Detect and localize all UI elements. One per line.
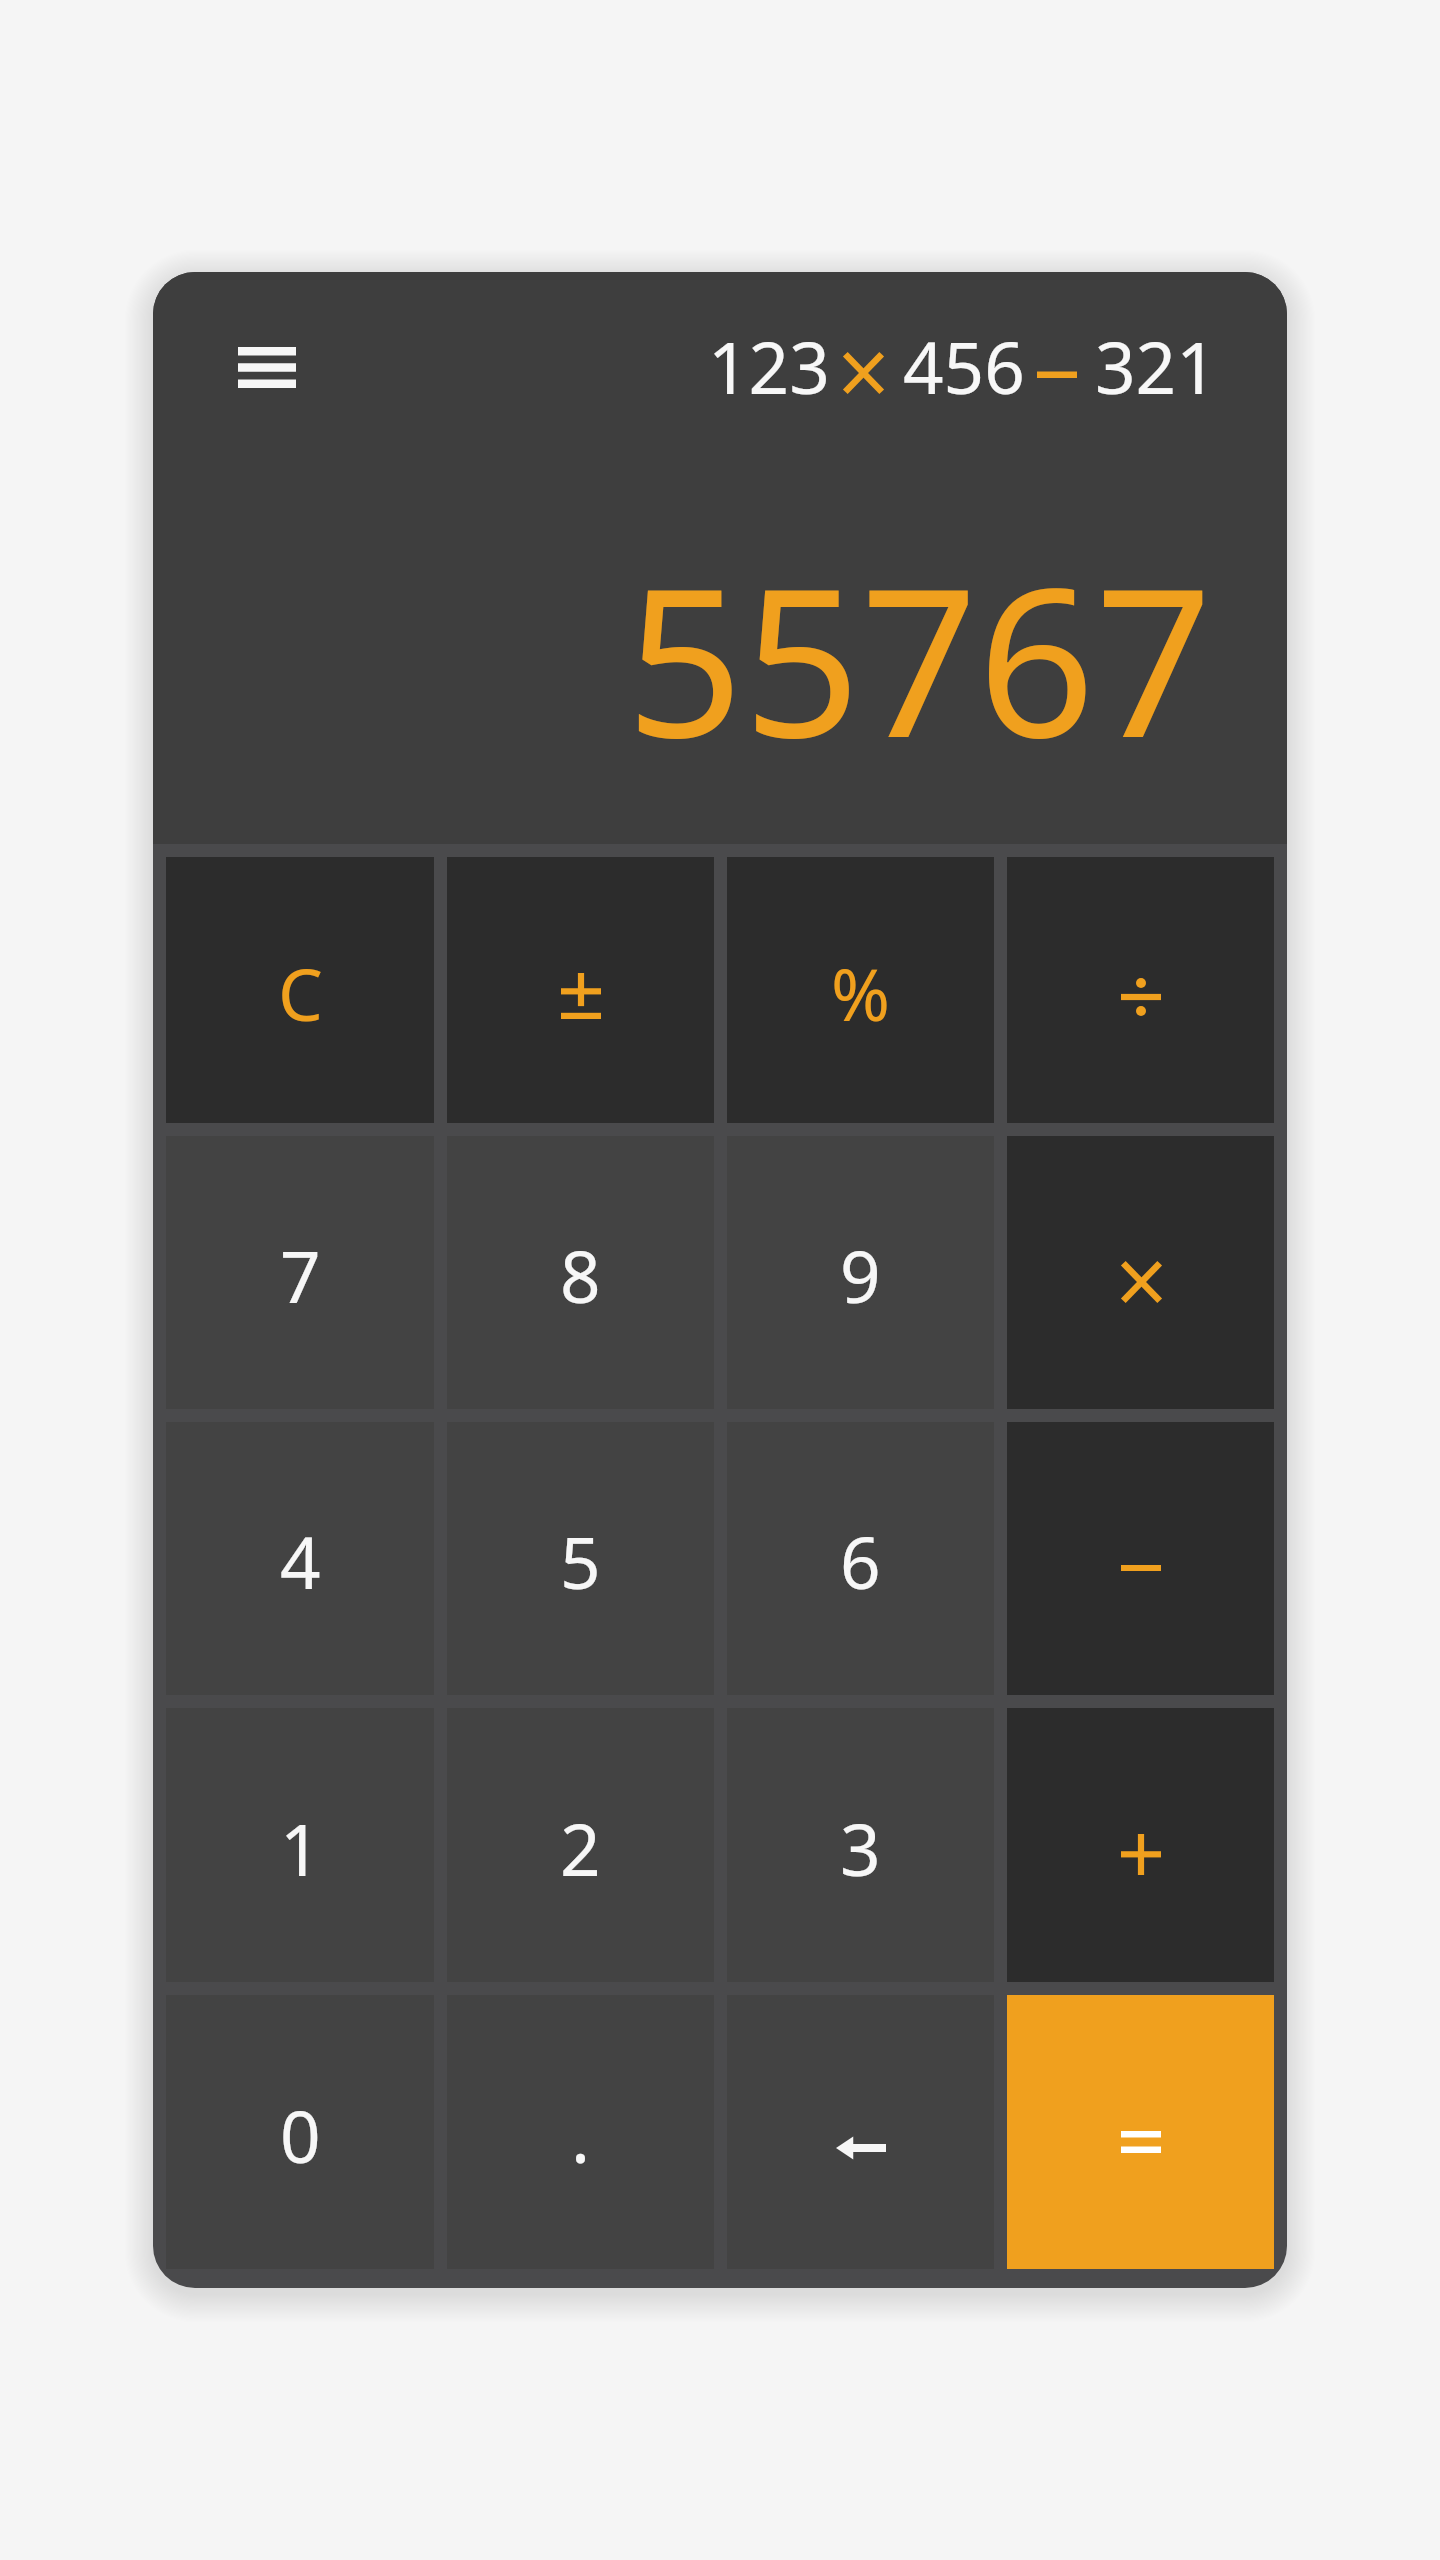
button[interactable]: 6 (727, 1422, 994, 1695)
staticText: 55767 (626, 518, 1213, 797)
button[interactable]: % (727, 857, 994, 1123)
button[interactable]: Equals (1007, 1995, 1274, 2269)
button[interactable]: Subtract (1007, 1422, 1274, 1695)
staticText: 6 (840, 1513, 881, 1610)
staticText: 2 (560, 1800, 601, 1897)
button[interactable]: 4 (166, 1422, 434, 1695)
staticText: % (831, 945, 891, 1042)
button[interactable]: Backspace (727, 1995, 994, 2269)
staticText: C (278, 945, 323, 1042)
button[interactable]: Multiply (1007, 1136, 1274, 1409)
staticText: . (571, 2087, 591, 2184)
staticText: 8 (560, 1227, 601, 1324)
button[interactable]: 5 (447, 1422, 714, 1695)
button[interactable]: 0 (166, 1995, 434, 2269)
staticText: 5 (560, 1513, 601, 1610)
staticText: 7 (280, 1227, 321, 1324)
button[interactable]: 2 (447, 1708, 714, 1982)
staticText: 321 (1095, 318, 1217, 415)
button[interactable]: C (166, 857, 434, 1123)
button[interactable]: Plus minus (447, 857, 714, 1123)
button[interactable]: 7 (166, 1136, 434, 1409)
button[interactable]: 3 (727, 1708, 994, 1982)
staticText: 123 (708, 318, 830, 415)
staticText: 1 (280, 1800, 321, 1897)
button[interactable]: 9 (727, 1136, 994, 1409)
staticText: 3 (840, 1800, 881, 1897)
button[interactable]: Add (1007, 1708, 1274, 1982)
staticText: 0 (280, 2087, 321, 2184)
staticText: 456 (903, 318, 1025, 415)
button[interactable]: Menu (229, 339, 305, 395)
button[interactable]: 1 (166, 1708, 434, 1982)
staticText: 4 (280, 1513, 321, 1610)
staticText: 9 (840, 1227, 881, 1324)
button[interactable]: 8 (447, 1136, 714, 1409)
button[interactable]: . (447, 1995, 714, 2269)
button[interactable]: Divide (1007, 857, 1274, 1123)
